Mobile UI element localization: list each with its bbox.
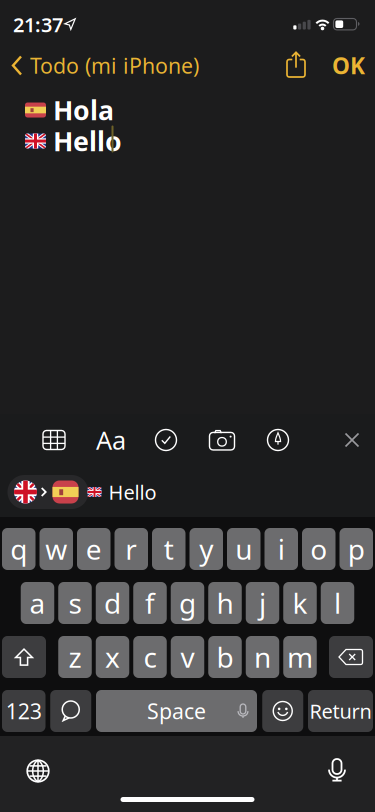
staticText: g (179, 584, 196, 622)
staticText: Aa (96, 423, 126, 457)
staticText: w (45, 530, 67, 568)
button[interactable]: x (96, 636, 129, 678)
button[interactable]: s (58, 582, 92, 624)
button[interactable]: t (152, 528, 185, 570)
staticText: y (199, 530, 213, 568)
button[interactable]: Shift (2, 636, 46, 678)
button[interactable]: q (2, 528, 35, 570)
staticText: Todo (mi iPhone) (30, 51, 199, 80)
staticText: Hello (53, 123, 122, 159)
staticText: n (254, 638, 271, 676)
button[interactable]: Space (96, 690, 257, 732)
staticText: q (10, 530, 27, 568)
staticText: u (235, 530, 252, 568)
button[interactable]: m (283, 636, 317, 678)
button[interactable]: Return (308, 690, 373, 732)
button[interactable]: v (171, 636, 204, 678)
button[interactable]: a (21, 582, 54, 624)
button[interactable]: 123 (2, 690, 45, 732)
button[interactable]: Dictation (50, 690, 91, 732)
button[interactable]: k (283, 582, 317, 624)
staticText: x (105, 638, 120, 676)
staticText: v (180, 638, 194, 676)
staticText: k (292, 584, 307, 622)
staticText: t (164, 530, 174, 568)
button[interactable]: n (246, 636, 279, 678)
button[interactable]: Next keyboard (16, 749, 60, 793)
button[interactable]: Dismiss keyboard (332, 418, 372, 462)
button[interactable]: l (321, 582, 354, 624)
button[interactable]: Format (89, 418, 133, 462)
staticText: OK (332, 50, 365, 80)
button[interactable]: h (208, 582, 242, 624)
staticText: r (125, 530, 137, 568)
button[interactable]: Insert table (34, 418, 74, 462)
button[interactable]: Emoji (262, 690, 303, 732)
button[interactable]: z (58, 636, 92, 678)
button[interactable]: Translate English to Spanish (7, 475, 88, 509)
button[interactable]: Insert photo (200, 418, 244, 462)
staticText: Hello (108, 479, 156, 505)
button[interactable]: r (114, 528, 148, 570)
button[interactable]: u (227, 528, 260, 570)
staticText: Space (147, 697, 206, 725)
staticText: i (278, 530, 285, 568)
button[interactable]: y (189, 528, 223, 570)
button[interactable]: w (39, 528, 73, 570)
staticText: d (104, 584, 121, 622)
staticText: s (68, 584, 81, 622)
button[interactable]: OK (326, 43, 370, 87)
button[interactable]: Delete (329, 636, 373, 678)
button[interactable]: f (133, 582, 167, 624)
button[interactable]: o (302, 528, 335, 570)
staticText: f (145, 584, 155, 622)
button[interactable]: j (246, 582, 279, 624)
staticText: z (68, 638, 81, 676)
button[interactable]: b (208, 636, 242, 678)
button[interactable]: d (96, 582, 129, 624)
staticText: m (287, 638, 313, 676)
staticText: b (216, 638, 233, 676)
staticText: Hola (53, 92, 114, 128)
button[interactable]: g (171, 582, 204, 624)
staticText: p (348, 530, 365, 568)
staticText: Return (309, 698, 371, 724)
button[interactable]: i (264, 528, 298, 570)
staticText: c (143, 638, 156, 676)
staticText: o (310, 530, 327, 568)
staticText: 123 (6, 697, 42, 725)
button[interactable]: e (77, 528, 110, 570)
staticText: h (216, 584, 233, 622)
button[interactable]: c (133, 636, 167, 678)
staticText: a (29, 584, 45, 622)
button[interactable]: Markup (256, 418, 300, 462)
button[interactable]: Todo (mi iPhone) (11, 43, 241, 87)
button[interactable]: Dictate (315, 748, 359, 792)
button[interactable]: Checklist (144, 418, 188, 462)
staticText: e (86, 530, 102, 568)
button[interactable]: Share (284, 50, 308, 78)
staticText: j (259, 584, 266, 622)
button[interactable]: Hello (87, 472, 156, 512)
staticText: l (334, 584, 341, 622)
button[interactable]: p (339, 528, 373, 570)
staticText: 21:37 (13, 11, 63, 38)
